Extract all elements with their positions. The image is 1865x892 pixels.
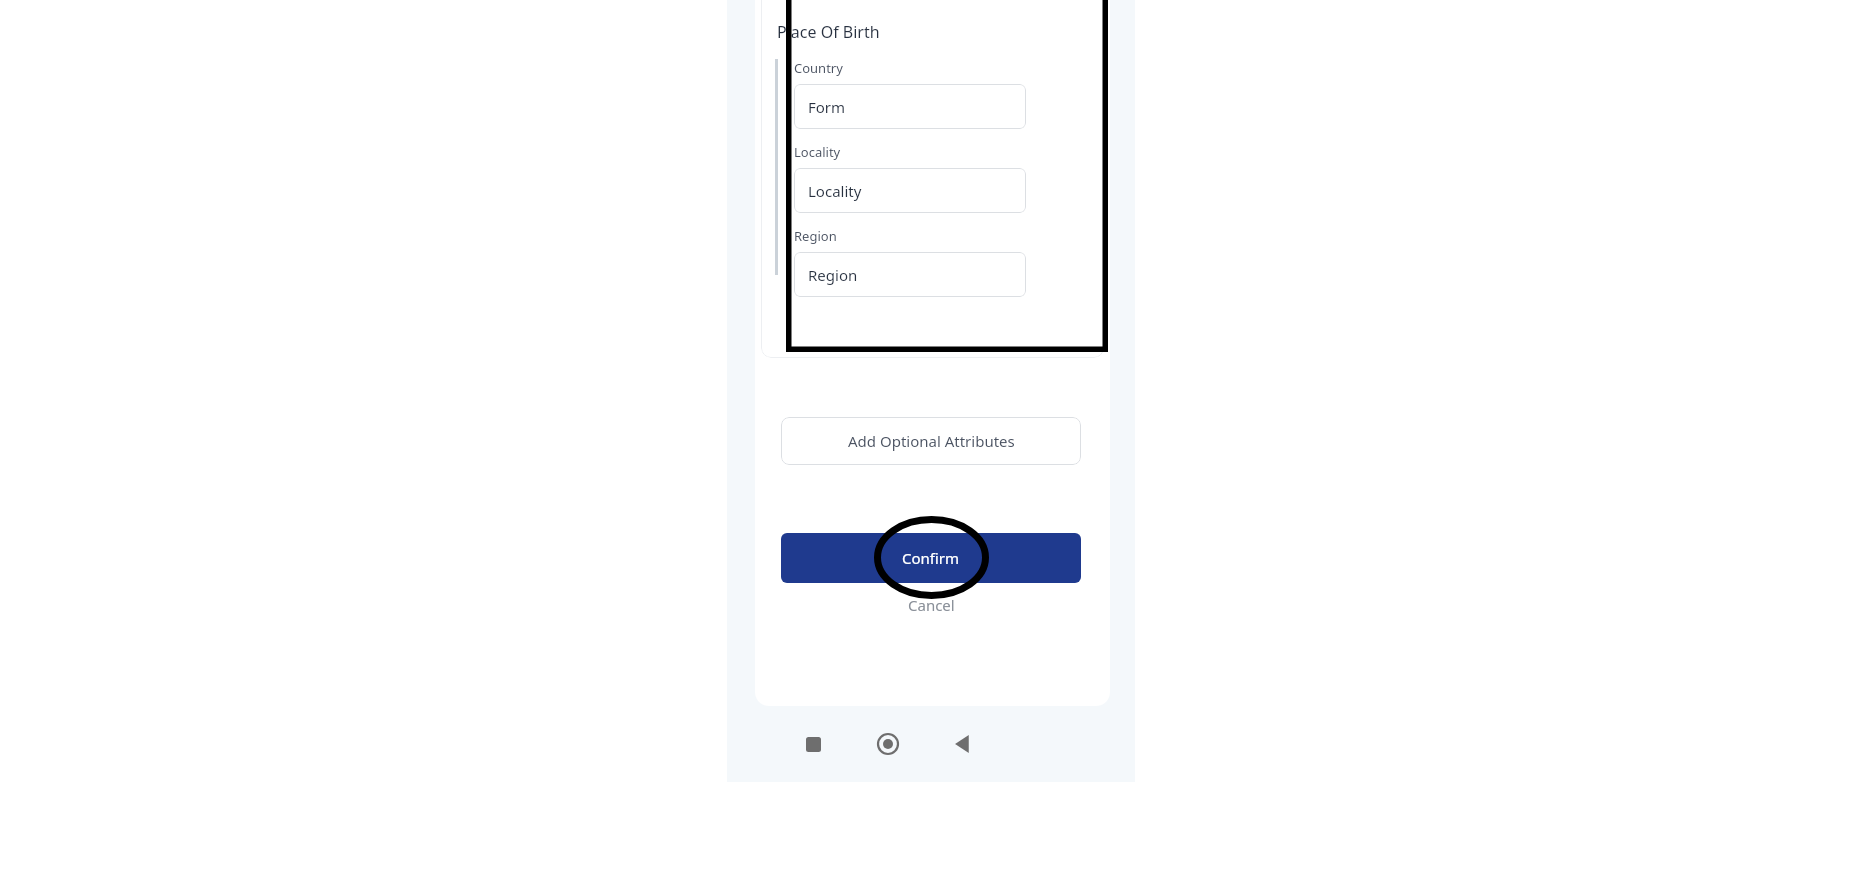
staticText: Region — [808, 265, 858, 285]
staticText: Locality — [794, 143, 841, 161]
button[interactable]: Confirm — [781, 533, 1081, 583]
button[interactable]: Home — [860, 716, 916, 772]
button[interactable]: Locality — [794, 168, 1026, 213]
staticText: Confirm — [902, 548, 960, 568]
staticText: Add Optional Attributes — [848, 431, 1015, 451]
staticText: Place Of Birth — [777, 21, 880, 43]
button[interactable]: Back — [935, 716, 991, 772]
button[interactable]: Add Optional Attributes — [781, 417, 1081, 465]
staticText: Cancel — [908, 595, 955, 615]
staticText: Region — [794, 227, 837, 245]
button[interactable]: Region — [794, 252, 1026, 297]
button[interactable]: Form — [794, 84, 1026, 129]
staticText: Form — [808, 97, 846, 117]
staticText: Country — [794, 59, 843, 77]
button[interactable]: Recent apps — [785, 716, 841, 772]
staticText: Locality — [808, 181, 862, 201]
button[interactable]: Cancel — [781, 589, 1081, 621]
